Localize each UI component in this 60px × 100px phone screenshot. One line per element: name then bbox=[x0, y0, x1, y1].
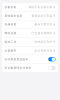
button[interactable]: 存储容量 bbox=[2, 20, 58, 29]
staticText: 自动更新系统版本 bbox=[4, 58, 28, 61]
staticText: 系统版本信息 bbox=[4, 14, 22, 17]
staticText: 电池工具 bbox=[4, 40, 16, 43]
button[interactable]: 系统版本信息 bbox=[2, 12, 58, 20]
staticText: 电池状态良好 bbox=[34, 40, 52, 43]
staticText: 后台数据同步与备份 bbox=[4, 66, 31, 70]
staticText: 已连接无线网络 bbox=[31, 31, 52, 35]
staticText: 存储容量 bbox=[4, 23, 16, 26]
staticText: 最新版本已安装 bbox=[31, 14, 52, 17]
staticText: 位置服务 bbox=[4, 49, 16, 52]
button[interactable]: 电池工具 bbox=[2, 38, 58, 46]
staticText: 定位权限开启 bbox=[34, 49, 52, 52]
button[interactable]: 位置服务 bbox=[2, 46, 58, 55]
button[interactable]: 设备名称 bbox=[2, 3, 58, 11]
staticText: 剩余可用空间 bbox=[34, 23, 52, 26]
button[interactable]: 网络连接 bbox=[2, 29, 58, 37]
staticText: 设备名称 bbox=[4, 5, 16, 9]
staticText: 网络连接 bbox=[4, 31, 16, 35]
button[interactable]: 自动更新系统版本 bbox=[48, 57, 56, 61]
staticText: 我的手机设备名称 bbox=[28, 5, 52, 9]
button[interactable]: 后台数据同步与备份 bbox=[48, 66, 56, 70]
